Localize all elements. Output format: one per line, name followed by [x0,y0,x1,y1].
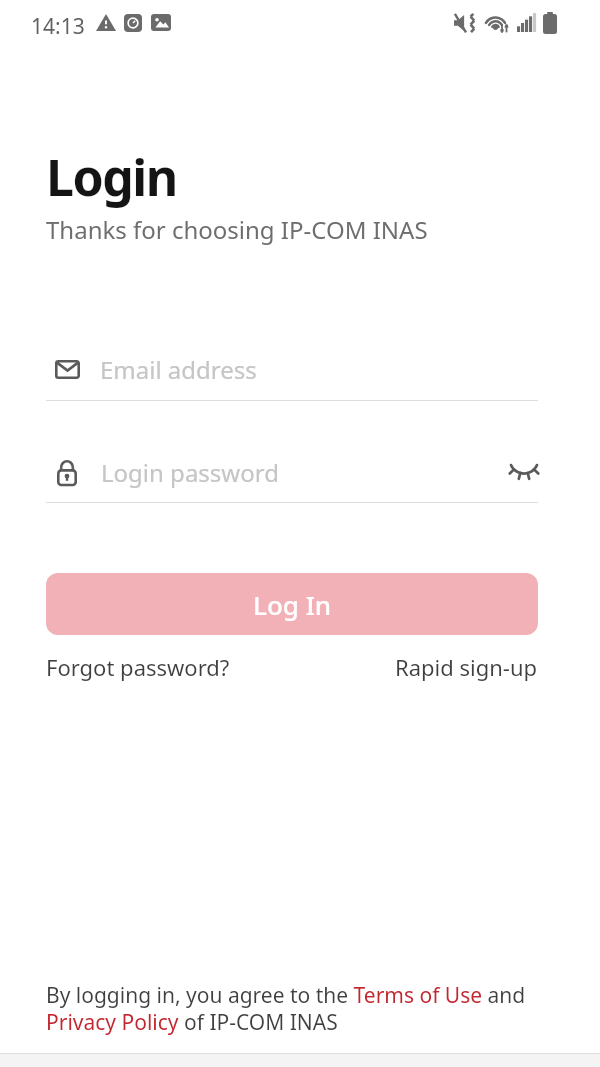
staticText: Log In [253,587,332,622]
button[interactable]: Log In [46,573,538,635]
button[interactable]: Forgot password? [46,652,230,682]
staticText: Email address [100,353,257,386]
button[interactable]: By logging in, you agree to the Terms of… [46,981,526,1036]
staticText: Login password [101,456,279,489]
staticText: 14:13 [31,12,85,41]
button[interactable]: Rapid sign-up [395,652,538,682]
staticText: Login [46,143,177,211]
button[interactable] [510,463,538,482]
staticText: Thanks for choosing IP-COM INAS [46,213,428,246]
